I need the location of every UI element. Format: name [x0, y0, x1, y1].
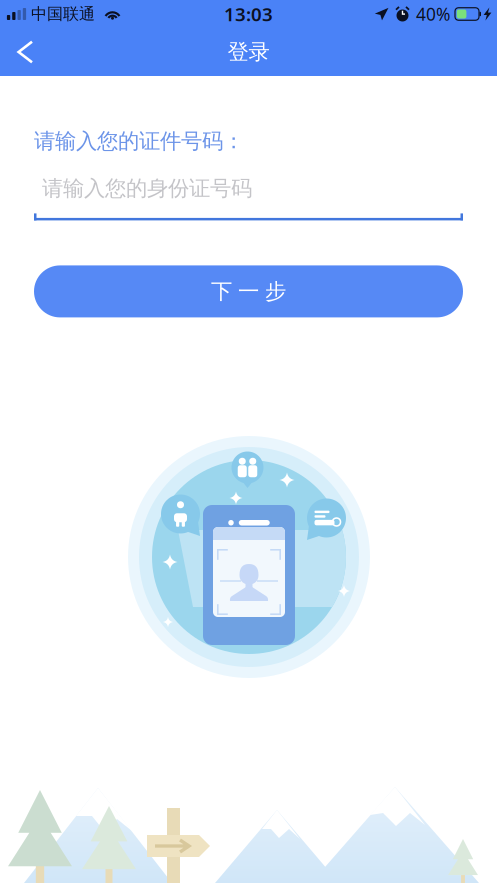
button[interactable]: 下 一 步	[34, 265, 463, 317]
button[interactable]: Back	[0, 27, 50, 76]
staticText: 请输入您的证件号码：	[34, 128, 244, 154]
staticText: 中国联通	[31, 4, 95, 24]
staticText: 40%	[416, 2, 450, 25]
staticText: 13:03	[224, 2, 273, 26]
staticText: 请输入您的身份证号码	[42, 175, 252, 201]
staticText: 下 一 步	[211, 278, 286, 304]
staticText: 登录	[227, 39, 269, 65]
